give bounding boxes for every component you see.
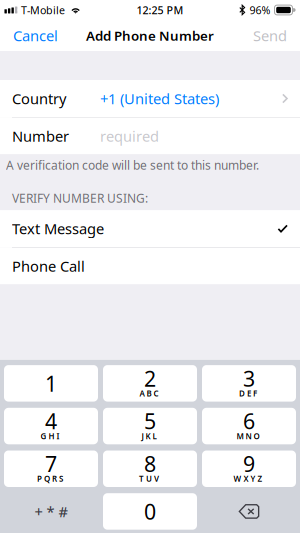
staticText: WXYZ [233,473,262,484]
staticText: 5 [144,407,156,435]
button[interactable]: Delete [202,493,296,530]
button[interactable]: 8 [103,450,197,487]
staticText: T-Mobile [21,3,65,17]
staticText: A verification code will be sent to this… [6,157,259,173]
staticText: Text Message [12,219,104,238]
button[interactable]: Text Message [0,210,300,247]
button[interactable]: Symbols [4,493,98,530]
staticText: Add Phone Number [86,27,214,44]
staticText: 0 [144,497,156,526]
button[interactable]: 1 [4,365,98,402]
staticText: 9 [243,450,255,478]
staticText: JKL [141,431,156,441]
staticText: Phone Call [12,256,85,276]
button[interactable]: 3 [202,365,296,402]
button[interactable]: 9 [202,450,296,487]
staticText: required [100,126,159,146]
button[interactable]: 0 [103,493,197,530]
staticText: + * # [34,502,67,521]
staticText: MNO [236,431,259,441]
staticText: 1 [45,369,57,397]
button[interactable]: 5 [103,408,197,444]
staticText: Cancel [13,26,58,45]
staticText: Country [12,89,66,108]
button[interactable]: Phone Call [0,248,300,284]
staticText: 6 [243,407,255,435]
staticText: GHI [40,431,59,441]
staticText: +1 (United States) [100,89,219,108]
staticText: 8 [144,450,156,478]
staticText: DEF [239,388,257,399]
button[interactable]: Cancel [0,20,71,51]
staticText: Number [12,126,69,146]
staticText: PQRS [37,473,63,484]
staticText: ABC [139,388,158,399]
staticText: Send [253,26,287,45]
button[interactable]: Country [0,80,300,117]
button[interactable]: 6 [202,408,296,444]
button[interactable]: 7 [4,450,98,487]
staticText: 4 [45,407,57,435]
staticText: TUV [139,473,159,484]
staticText: 96% [249,3,270,17]
staticText: 2 [144,364,156,392]
staticText: 12:25 PM [136,3,183,17]
button[interactable]: 4 [4,408,98,444]
staticText: 7 [45,450,57,478]
staticText: 3 [243,364,255,392]
button[interactable]: Send [240,20,300,51]
staticText: VERIFY NUMBER USING: [12,190,148,206]
button[interactable]: 2 [103,365,197,402]
